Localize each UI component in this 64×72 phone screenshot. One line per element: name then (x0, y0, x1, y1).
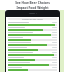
button[interactable]: Beer calorie entry (8, 22, 57, 26)
staticText: example.com/beer-calories (22, 18, 43, 20)
button[interactable]: Beer calorie entry (8, 47, 57, 51)
staticText: See How Beer Choices (15, 1, 50, 5)
button[interactable]: Beer calorie entry (8, 27, 57, 31)
button[interactable]: Beer calorie entry (8, 42, 57, 46)
button[interactable]: Beer calorie entry (8, 32, 57, 36)
button[interactable]: Beer calorie entry (8, 37, 57, 41)
staticText: Impact Food Weight (16, 6, 49, 10)
button[interactable]: Beer calorie entry (8, 62, 57, 66)
button[interactable]: Beer calorie entry (8, 52, 57, 56)
button[interactable]: example.com/beer-calories (6, 17, 59, 21)
button[interactable]: Beer calorie entry (8, 57, 57, 61)
button[interactable]: Beer calorie entry (8, 67, 57, 71)
